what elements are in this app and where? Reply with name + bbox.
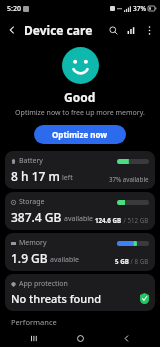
staticText: Performance [11,317,57,327]
button[interactable]: Battery [5,151,155,189]
staticText: 8 h 17 m [11,168,60,184]
button[interactable]: Optimize now [34,125,126,144]
staticText: Device care [24,22,93,38]
button[interactable]: Storage [5,192,155,230]
staticText: 37% available [109,175,149,183]
staticText: Memory [19,238,47,248]
button[interactable]: Memory [5,233,155,271]
button[interactable]: Recent apps [22,329,46,347]
staticText: 124.6 GB [95,216,122,224]
staticText: 37% [133,4,146,13]
staticText: / 8 GB [129,257,149,265]
staticText: 5:20 [7,4,21,14]
staticText: left [62,173,73,183]
staticText: available [50,255,80,265]
button[interactable]: Home [68,329,92,347]
staticText: Optimize now to free up more memory. [15,108,145,118]
staticText: 5 GB [115,257,129,265]
staticText: Battery [19,156,43,166]
button[interactable]: Back [114,329,138,347]
button[interactable]: Back [3,21,21,39]
staticText: 1.9 GB [11,250,48,266]
staticText: 387.4 GB [11,209,62,225]
staticText: available [64,214,94,224]
button[interactable]: Search [104,21,122,39]
staticText: No threats found [11,291,101,306]
staticText: Good [64,89,96,105]
staticText: App protection [19,279,68,289]
button[interactable]: More options [140,21,158,39]
button[interactable]: App protection [5,274,155,311]
staticText: Optimize now [52,129,108,140]
button[interactable]: Statistics [122,21,140,39]
staticText: Storage [19,197,45,207]
staticText: / 512 GB [122,216,149,224]
